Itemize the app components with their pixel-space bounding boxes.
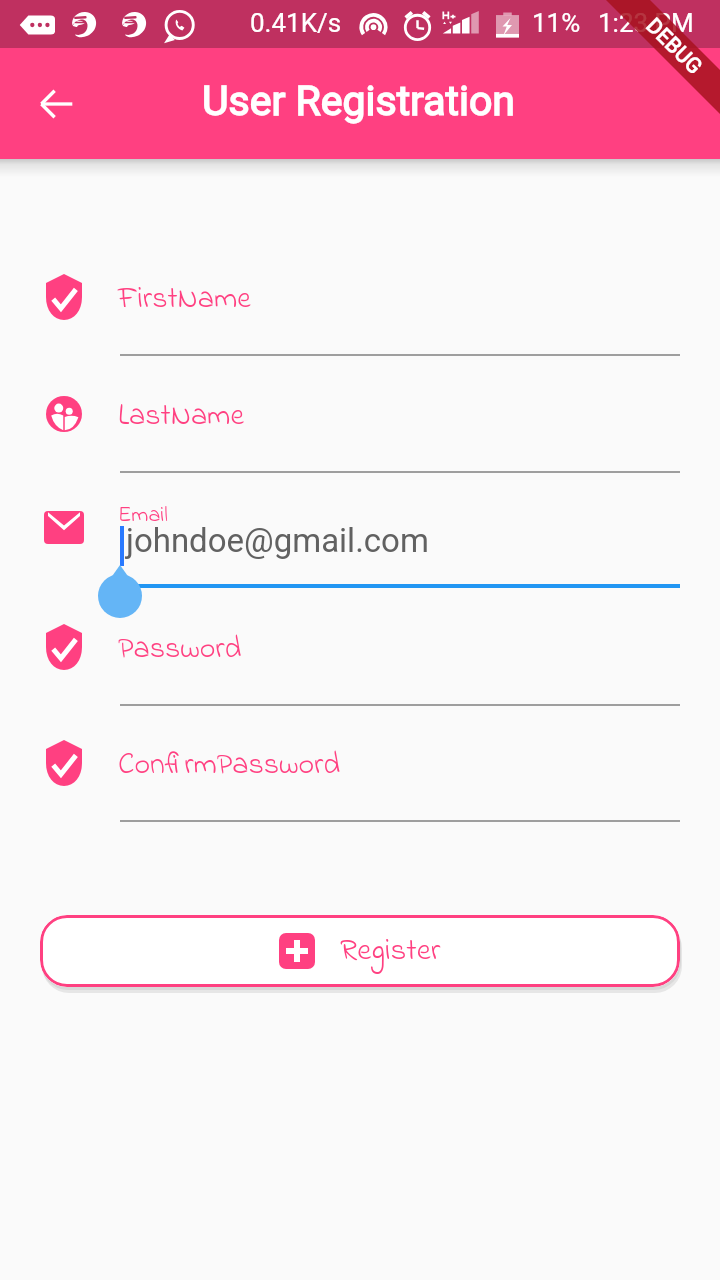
button[interactable]: FirstName <box>0 252 720 358</box>
button[interactable]: Register <box>40 915 680 987</box>
staticText: 11% <box>532 8 581 38</box>
staticText: Register <box>340 929 441 974</box>
staticText: Email <box>118 500 168 532</box>
button[interactable]: Password <box>0 602 720 708</box>
staticText: User Registration <box>202 77 515 125</box>
staticText: FirstName <box>118 278 251 322</box>
staticText: johndoe@gmail.com <box>126 521 429 560</box>
staticText: Password <box>118 628 242 672</box>
staticText: 0.41K/s <box>250 8 342 38</box>
button[interactable]: Email <box>0 484 720 624</box>
button[interactable]: Back <box>24 72 88 136</box>
staticText: LastName <box>118 395 244 439</box>
staticText: 1:23 PM <box>598 8 694 38</box>
staticText: ConfirmPassword <box>118 744 341 788</box>
staticText: DEBUG <box>641 13 707 80</box>
button[interactable]: LastName <box>0 369 720 475</box>
button[interactable]: ConfirmPassword <box>0 718 720 824</box>
